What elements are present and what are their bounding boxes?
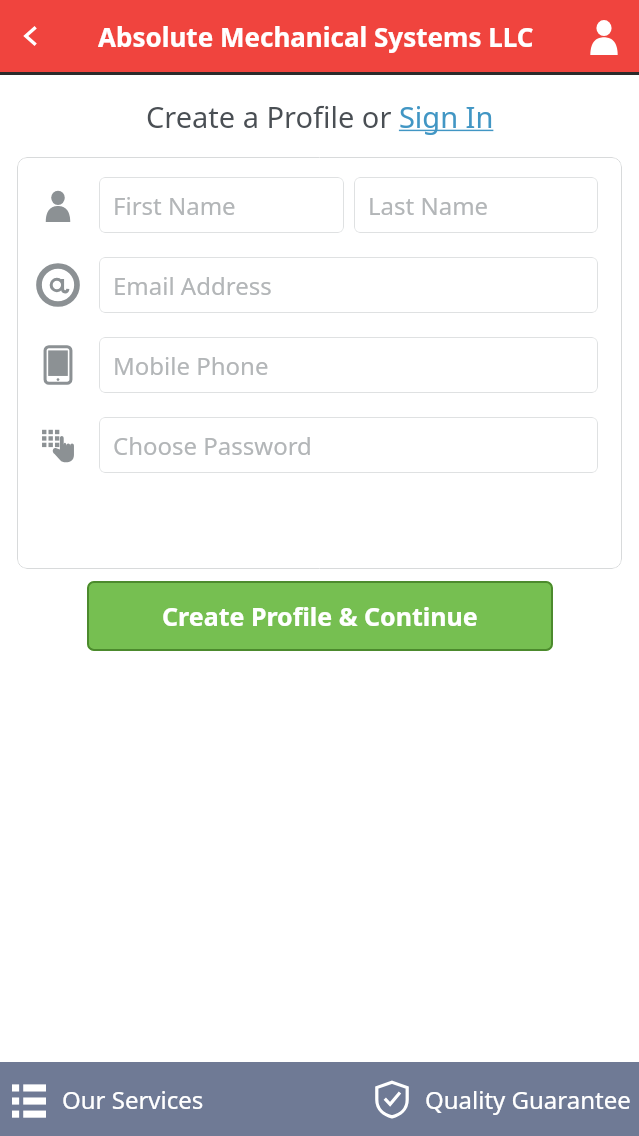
button[interactable]: Quality Guarantee: [319, 1062, 639, 1136]
staticText: Quality Guarantee: [425, 1083, 631, 1116]
staticText: Create Profile & Continue: [162, 599, 478, 633]
staticText: Mobile Phone: [113, 349, 269, 382]
staticText: First Name: [113, 189, 236, 222]
button[interactable]: Back: [0, 0, 62, 72]
staticText: Email Address: [113, 269, 272, 302]
staticText: Choose Password: [113, 429, 312, 462]
button[interactable]: Mobile Phone: [99, 337, 598, 393]
button[interactable]: Email Address: [99, 257, 598, 313]
staticText: Create a Profile or Sign In: [146, 97, 494, 136]
staticText: Our Services: [62, 1083, 204, 1116]
button[interactable]: Last Name: [354, 177, 598, 233]
button[interactable]: First Name: [99, 177, 344, 233]
button[interactable]: Choose Password: [99, 417, 598, 473]
staticText: Last Name: [368, 189, 489, 222]
button[interactable]: Our Services: [0, 1062, 319, 1136]
button[interactable]: Create Profile & Continue: [87, 581, 553, 651]
staticText: Absolute Mechanical Systems LLC: [98, 19, 534, 54]
button[interactable]: Account: [569, 0, 639, 72]
